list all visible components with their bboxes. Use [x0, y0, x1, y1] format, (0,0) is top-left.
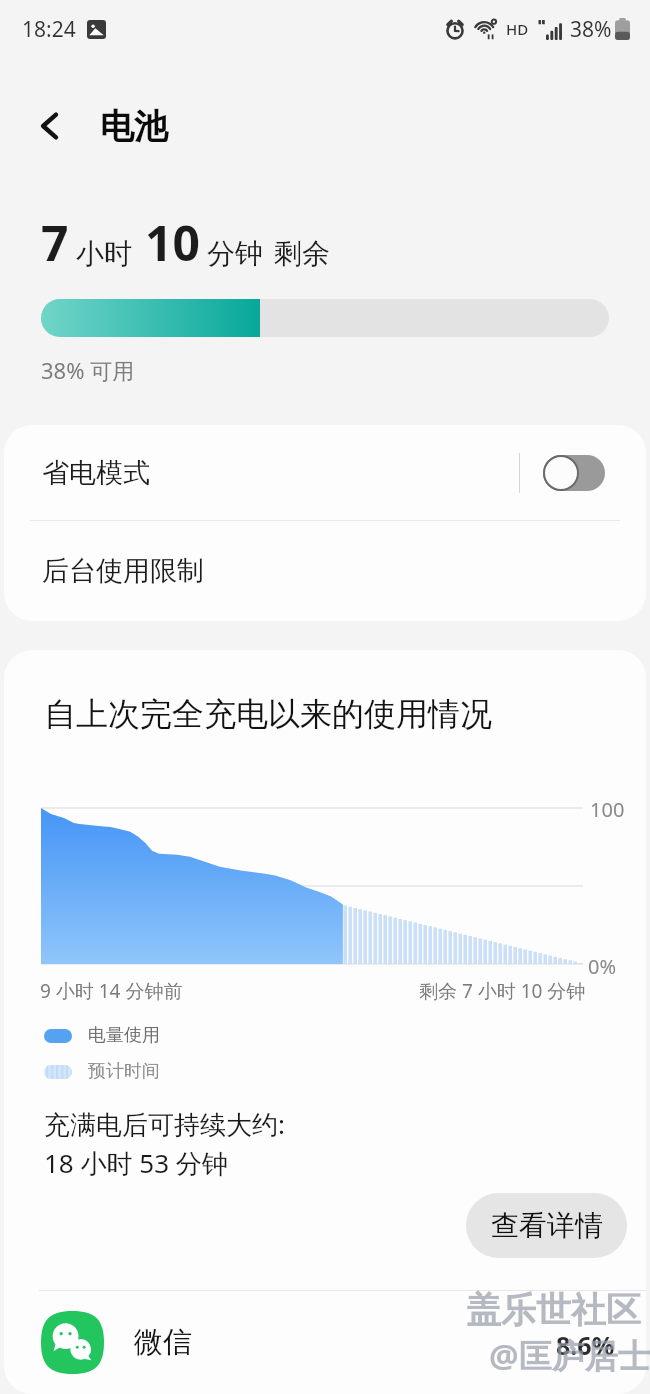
staticText: 7 — [41, 210, 69, 275]
staticText: 自上次完全充电以来的使用情况 — [44, 694, 492, 734]
staticText: @匡庐居士 — [489, 1333, 650, 1378]
staticText: 充满电后可持续大约: — [44, 1106, 285, 1142]
button[interactable]: 后台使用限制 — [4, 521, 646, 621]
staticText: 38% 可用 — [41, 355, 135, 385]
staticText: 18 小时 53 分钟 — [44, 1145, 228, 1181]
staticText: 省电模式 — [42, 456, 150, 490]
staticText: 9 小时 14 分钟前 — [40, 978, 183, 1004]
staticText: 100 — [590, 796, 625, 823]
button[interactable]: Back — [26, 102, 74, 150]
staticText: 微信 — [134, 1324, 192, 1361]
staticText: 查看详情 — [491, 1208, 603, 1243]
staticText: 预计时间 — [88, 1060, 160, 1083]
staticText: 小时 — [76, 236, 132, 271]
staticText: HD — [506, 19, 529, 39]
button[interactable]: 省电模式 — [4, 425, 646, 520]
staticText: 38% — [570, 15, 612, 44]
button[interactable]: 查看详情 — [466, 1193, 627, 1258]
staticText: 18:24 — [22, 15, 76, 44]
staticText: 剩余 7 小时 10 分钟 — [419, 978, 586, 1004]
staticText: 10 — [145, 210, 200, 275]
button[interactable]: 微信 — [4, 1291, 646, 1394]
button[interactable]: Power saving mode toggle — [543, 455, 605, 491]
staticText: 分钟 — [207, 236, 263, 271]
staticText: 后台使用限制 — [42, 554, 204, 588]
staticText: 剩余 — [274, 236, 330, 271]
staticText: 0% — [588, 953, 617, 980]
staticText: 8.6% — [556, 1328, 615, 1362]
staticText: 盖乐世社区 — [466, 1288, 641, 1332]
staticText: 电池 — [100, 105, 168, 148]
staticText: 电量使用 — [88, 1024, 160, 1047]
